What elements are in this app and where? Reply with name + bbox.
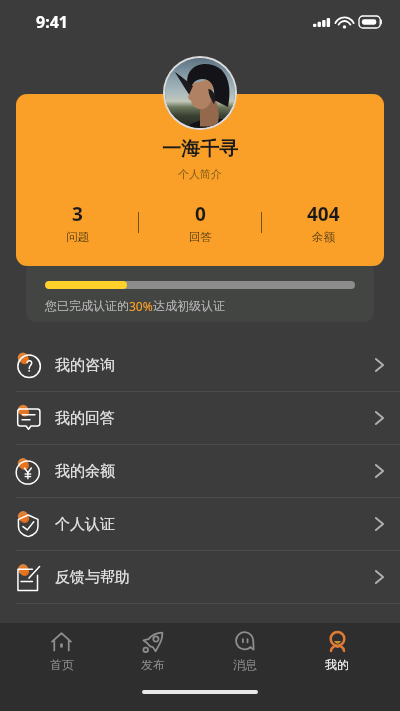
staticText: 我的回答 (55, 409, 115, 428)
staticText: 余额 (312, 230, 335, 244)
staticText: 我的咨询 (55, 356, 115, 375)
staticText: 我的余额 (55, 462, 115, 481)
staticText: 0 (195, 201, 206, 227)
button[interactable]: 我的咨询 (0, 339, 400, 392)
staticText: 回答 (189, 230, 212, 244)
button[interactable]: 反馈与帮助 (0, 551, 400, 604)
button[interactable]: 首页 (16, 623, 107, 711)
button[interactable]: 消息 (199, 623, 291, 711)
button[interactable]: 我的 (291, 623, 383, 711)
staticText: 30% (129, 298, 153, 314)
staticText: 您已完成认证的 (45, 298, 129, 313)
staticText: 消息 (233, 657, 257, 672)
staticText: 首页 (50, 657, 74, 672)
button[interactable]: 个人认证 (0, 498, 400, 551)
button[interactable]: 我的余额 (0, 445, 400, 498)
staticText: 我的 (325, 657, 349, 672)
staticText: 问题 (66, 230, 89, 244)
staticText: 404 (307, 201, 340, 227)
staticText: 个人认证 (55, 515, 115, 534)
button[interactable]: 发布 (107, 623, 199, 711)
staticText: 发布 (141, 657, 165, 672)
staticText: 达成初级认证 (153, 298, 225, 313)
staticText: 反馈与帮助 (55, 568, 130, 587)
staticText: 3 (72, 201, 83, 227)
staticText: 一海千寻 (162, 137, 238, 161)
button[interactable]: 我的回答 (0, 392, 400, 445)
staticText: 9:41 (36, 11, 68, 33)
staticText: 个人简介 (178, 167, 222, 181)
